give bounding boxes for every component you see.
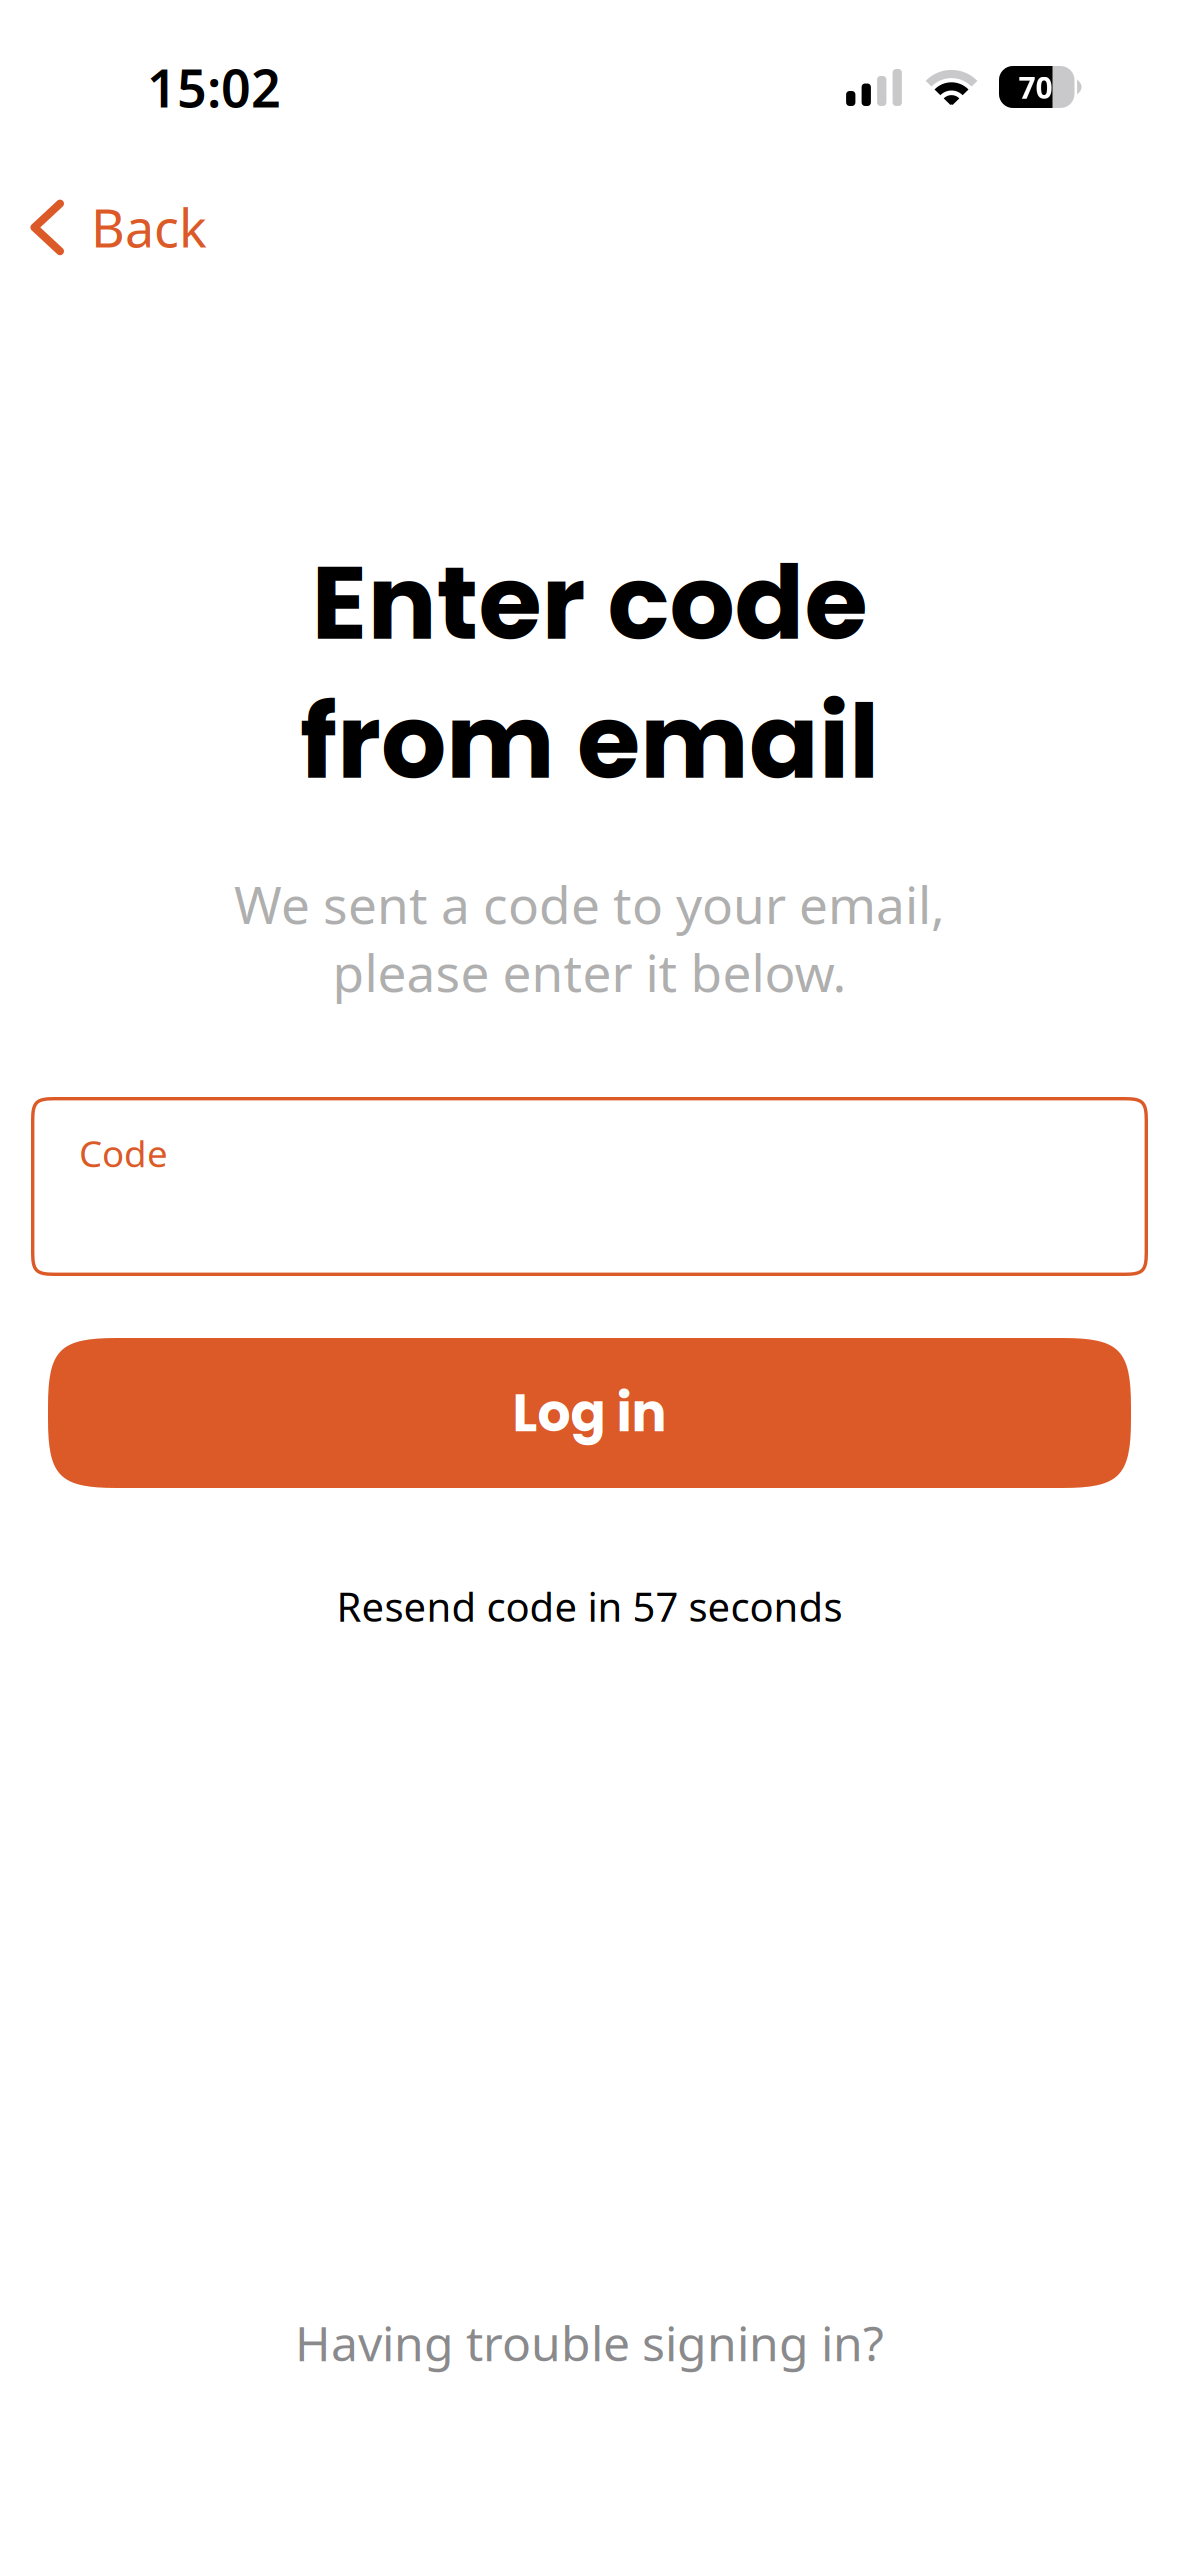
button[interactable]: Having trouble signing in? [259, 2288, 920, 2397]
button[interactable]: Resend code in 57 seconds [306, 1561, 872, 1651]
staticText: please enter it below. [332, 937, 846, 1007]
button[interactable]: Code [31, 1097, 1148, 1276]
button[interactable]: Back [0, 172, 233, 283]
staticText: Enter code [311, 531, 867, 675]
staticText: 70 [1018, 67, 1052, 107]
staticText: Resend code in 57 seconds [336, 1579, 842, 1633]
staticText: Back [91, 192, 207, 263]
staticText: Code [79, 1128, 168, 1178]
staticText: We sent a code to your email, [234, 869, 945, 939]
staticText: 15:02 [147, 52, 281, 123]
staticText: Having trouble signing in? [295, 2310, 884, 2375]
button[interactable]: Log in [48, 1338, 1131, 1488]
staticText: Log in [512, 1377, 666, 1449]
staticText: from email [300, 670, 879, 814]
